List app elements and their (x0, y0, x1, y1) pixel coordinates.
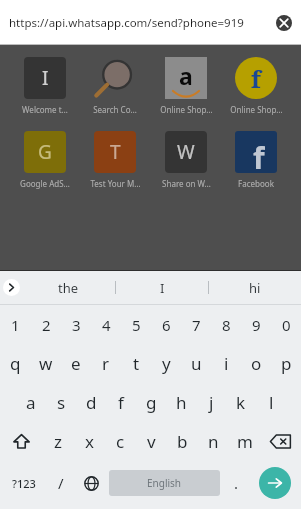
staticText: 8 (222, 315, 231, 335)
staticText: t (133, 352, 140, 375)
button[interactable]: q (0, 344, 31, 383)
staticText: u (191, 352, 202, 375)
button[interactable]: 8 (211, 305, 241, 344)
staticText: Google AdS… (20, 178, 70, 189)
staticText: l (269, 391, 274, 414)
button[interactable]: c (105, 422, 136, 461)
button[interactable]: English (109, 470, 220, 496)
button[interactable]: Search Co… (81, 55, 149, 117)
staticText: 6 (162, 315, 171, 335)
button[interactable]: f (106, 383, 136, 422)
staticText: i (224, 352, 229, 375)
staticText: https://api.whatsapp.com/send?phone=919 (9, 15, 270, 31)
staticText: Facebook (238, 178, 274, 189)
button[interactable]: Shift (0, 422, 42, 461)
staticText: j (209, 391, 214, 414)
button[interactable]: f (222, 55, 290, 117)
button[interactable]: a (15, 383, 46, 422)
button[interactable]: r (91, 344, 121, 383)
button[interactable]: k (226, 383, 256, 422)
button[interactable]: Go (251, 461, 299, 505)
button[interactable]: Change keyboard language (75, 461, 107, 505)
button[interactable]: j (196, 383, 226, 422)
button[interactable]: f (222, 129, 290, 191)
staticText: T (110, 139, 121, 165)
staticText: 9 (252, 315, 261, 335)
button[interactable]: Backspace (260, 422, 301, 461)
button[interactable]: the (22, 271, 115, 304)
staticText: G (38, 139, 52, 165)
button[interactable]: 4 (91, 305, 121, 344)
staticText: hi (249, 279, 261, 297)
button[interactable]: 1 (0, 305, 31, 344)
staticText: I (160, 279, 165, 297)
button[interactable]: . (222, 461, 251, 505)
staticText: a (26, 391, 36, 414)
button[interactable]: 6 (151, 305, 181, 344)
staticText: x (85, 430, 94, 453)
button[interactable]: z (42, 422, 74, 461)
staticText: k (236, 391, 246, 414)
button[interactable]: h (166, 383, 196, 422)
staticText: the (58, 279, 79, 297)
button[interactable]: x (74, 422, 105, 461)
button[interactable]: 0 (271, 305, 301, 344)
button[interactable]: w (31, 344, 61, 383)
button[interactable]: d (76, 383, 106, 422)
button[interactable]: 3 (61, 305, 91, 344)
button[interactable]: Expand suggestions (0, 271, 22, 304)
button[interactable]: 2 (31, 305, 61, 344)
staticText: p (281, 352, 292, 375)
button[interactable]: I (11, 55, 79, 117)
button[interactable]: ?123 (0, 461, 47, 505)
button[interactable]: n (198, 422, 229, 461)
staticText: 4 (102, 315, 111, 335)
button[interactable]: e (61, 344, 91, 383)
button[interactable]: a (152, 55, 220, 117)
button[interactable]: t (121, 344, 151, 383)
staticText: Welcome t… (22, 104, 68, 115)
staticText: 7 (192, 315, 201, 335)
staticText: w (39, 352, 53, 375)
staticText: n (208, 430, 219, 453)
staticText: r (102, 352, 110, 375)
staticText: e (71, 352, 81, 375)
staticText: y (162, 352, 171, 375)
button[interactable]: p (271, 344, 301, 383)
button[interactable]: i (211, 344, 241, 383)
button[interactable]: o (241, 344, 271, 383)
staticText: g (146, 391, 157, 414)
button[interactable]: W (152, 129, 220, 191)
button[interactable]: b (167, 422, 198, 461)
button[interactable]: / (47, 461, 75, 505)
staticText: f (253, 137, 265, 173)
staticText: 0 (282, 315, 291, 335)
button[interactable]: 7 (181, 305, 211, 344)
staticText: v (147, 430, 156, 453)
button[interactable]: u (181, 344, 211, 383)
button[interactable]: Clear text (273, 12, 295, 34)
staticText: Online Shop… (230, 104, 283, 115)
button[interactable]: https://api.whatsapp.com/send?phone=919 (0, 0, 301, 45)
button[interactable]: 9 (241, 305, 271, 344)
button[interactable]: hi (209, 271, 301, 304)
button[interactable]: g (136, 383, 166, 422)
staticText: z (54, 430, 62, 453)
button[interactable]: G (11, 129, 79, 191)
staticText: a (179, 60, 193, 91)
button[interactable]: I (116, 271, 208, 304)
staticText: c (116, 430, 125, 453)
button[interactable]: m (229, 422, 260, 461)
button[interactable]: y (151, 344, 181, 383)
staticText: d (86, 391, 97, 414)
button[interactable]: s (46, 383, 76, 422)
button[interactable]: T (81, 129, 149, 191)
staticText: I (42, 65, 49, 91)
staticText: o (251, 352, 262, 375)
button[interactable]: 5 (121, 305, 151, 344)
staticText: Test Your M… (90, 178, 141, 189)
staticText: Online Shop… (160, 104, 213, 115)
button[interactable]: l (256, 383, 286, 422)
button[interactable]: v (136, 422, 167, 461)
staticText: f (118, 391, 124, 414)
